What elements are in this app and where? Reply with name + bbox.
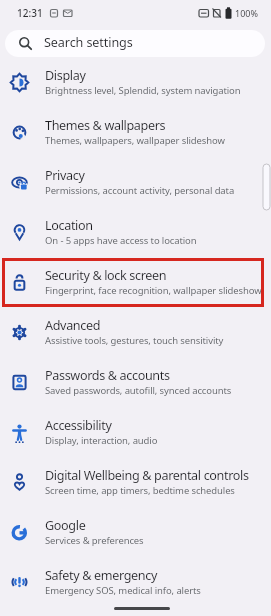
button[interactable]: Passwords & accounts: [0, 362, 271, 412]
staticText: 100%: [235, 7, 258, 19]
button[interactable]: Advanced: [0, 312, 271, 362]
staticText: On - 5 apps have access to location: [45, 234, 197, 247]
staticText: 12:31: [17, 6, 43, 20]
staticText: Location: [45, 217, 93, 234]
button[interactable]: Digital Wellbeing & parental controls: [0, 462, 271, 512]
staticText: Privacy: [45, 167, 85, 184]
button[interactable]: Security & lock screen: [0, 262, 271, 312]
staticText: Security & lock screen: [45, 267, 167, 284]
button[interactable]: Display: [0, 62, 271, 112]
staticText: Display, interaction, audio: [45, 434, 158, 447]
staticText: Passwords & accounts: [45, 367, 170, 384]
staticText: Accessibility: [45, 417, 112, 434]
staticText: Emergency SOS, medical info, alerts: [45, 584, 201, 597]
button[interactable]: Google: [0, 512, 271, 562]
staticText: Brightness level, Splendid, system navig…: [45, 84, 241, 97]
button[interactable]: Privacy: [0, 162, 271, 212]
staticText: Fingerprint, face recognition, wallpaper…: [45, 284, 262, 297]
staticText: Screen time, app timers, bedtime schedul…: [45, 484, 235, 497]
button[interactable]: Safety & emergency: [0, 562, 271, 612]
staticText: Safety & emergency: [45, 567, 158, 584]
staticText: Permissions, account activity, personal …: [45, 184, 235, 197]
staticText: Saved passwords, autofill, synced accoun…: [45, 384, 232, 397]
staticText: Assistive tools, gestures, touch sensiti…: [45, 334, 224, 347]
button[interactable]: Accessibility: [0, 412, 271, 462]
staticText: Display: [45, 67, 86, 84]
button[interactable]: Themes & wallpapers: [0, 112, 271, 162]
button[interactable]: Search settings: [5, 30, 265, 57]
staticText: Themes, wallpapers, wallpaper slideshow: [45, 134, 225, 147]
staticText: Digital Wellbeing & parental controls: [45, 467, 249, 484]
staticText: Themes & wallpapers: [45, 117, 166, 134]
staticText: Services & preferences: [45, 534, 144, 547]
staticText: Search settings: [44, 34, 133, 51]
staticText: Google: [45, 517, 86, 534]
button[interactable]: Location: [0, 212, 271, 262]
staticText: Advanced: [45, 317, 101, 334]
